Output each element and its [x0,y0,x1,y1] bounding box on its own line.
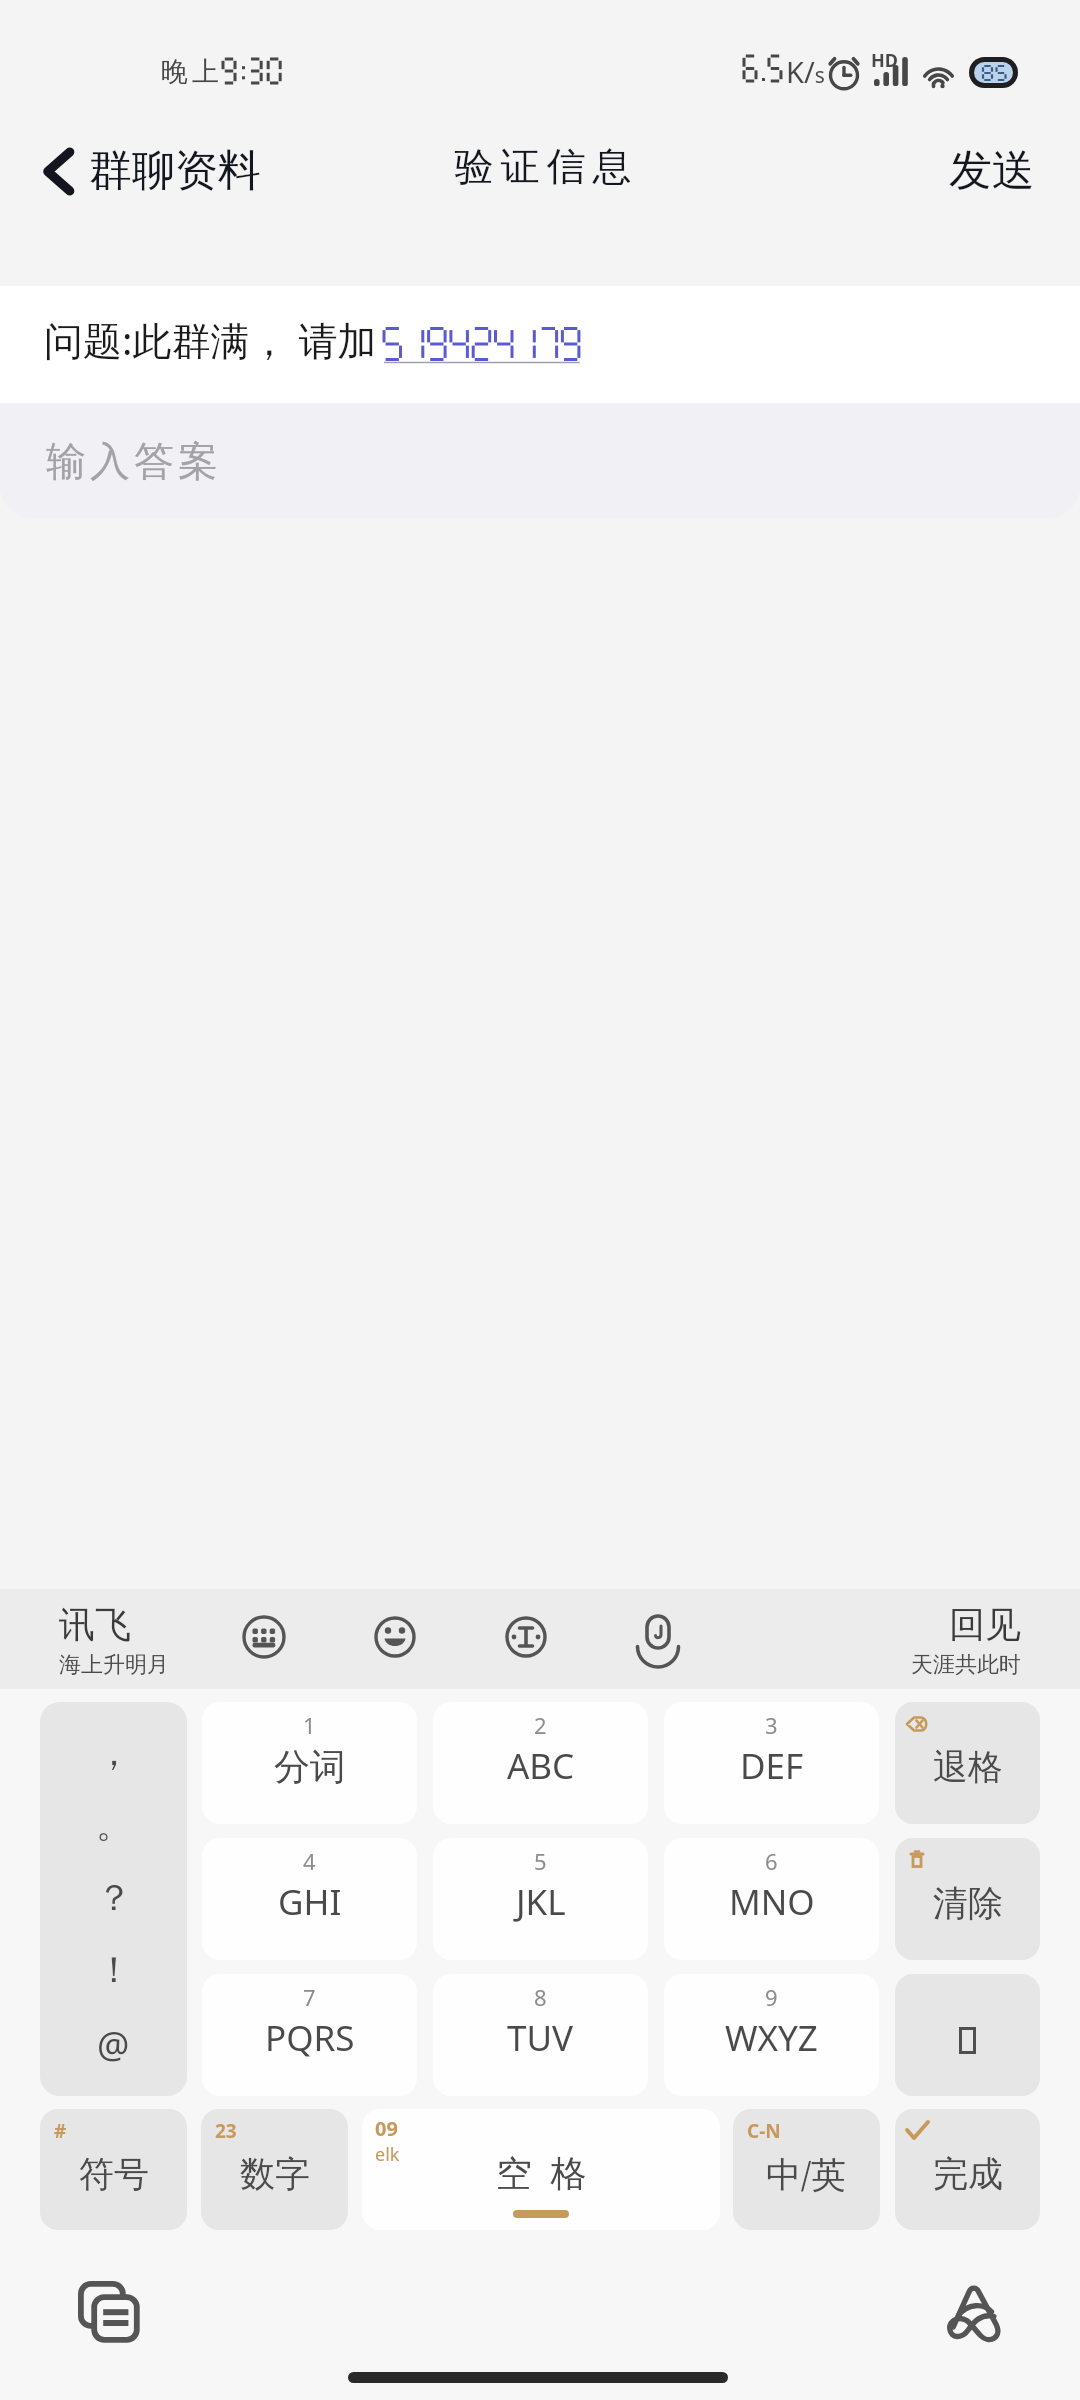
button[interactable]: 8 [433,1974,648,2096]
staticText: GHI [278,1878,342,1926]
staticText: 清除 [933,1881,1003,1925]
button[interactable] [895,1974,1040,2096]
staticText: 4 [303,1846,316,1876]
staticText: 1 [303,1710,316,1740]
staticText: JKL [516,1878,566,1926]
button[interactable]: 23 [201,2109,348,2230]
button[interactable]: C-N [733,2109,880,2230]
button[interactable]: 发送 [930,130,1054,212]
button[interactable]: # [40,2109,187,2230]
staticText: 海上升明月 [59,1651,169,1679]
button[interactable]: Back to 群聊资料 [26,130,280,212]
staticText: @ [97,2020,130,2069]
staticText: C-N [747,2118,781,2144]
staticText: 发送 [949,144,1035,198]
staticText: 回见 [949,1602,1021,1647]
staticText: 问题:此群满， 请加 [44,313,377,366]
staticText: 晚上 [159,55,221,89]
staticText: ， [96,1730,132,1775]
button[interactable]: 09 [362,2109,720,2230]
button[interactable]: Keyboard [232,1605,296,1669]
staticText: 完成 [933,2152,1003,2196]
staticText: 输入答案 [44,436,220,486]
staticText: 3 [765,1710,778,1740]
staticText: 数字 [240,2152,310,2196]
staticText: MNO [729,1878,815,1926]
staticText: 分词 [274,1744,346,1789]
staticText: 天涯共此时 [911,1651,1021,1679]
staticText: 。 [96,1802,132,1847]
staticText: 验证信息 [451,142,635,191]
staticText: DEF [740,1742,804,1790]
staticText: # [54,2118,67,2144]
staticText: 9 [765,1982,778,2012]
staticText: 空 格 [496,2148,587,2197]
button[interactable]: 输入答案 [0,403,1080,518]
button[interactable]: 清除 [895,1838,1040,1960]
button[interactable]: 6 [664,1838,879,1960]
button[interactable]: 5 [433,1838,648,1960]
button[interactable]: 4 [202,1838,417,1960]
button[interactable]: Clipboard [62,2265,154,2357]
button[interactable]: Voice input [626,1605,690,1669]
button[interactable]: iFlytek input method [928,2268,1018,2358]
staticText: 符号 [79,2152,149,2196]
staticText: 6 [765,1846,778,1876]
staticText: 群聊资料 [89,144,261,198]
button[interactable]: 7 [202,1974,417,2096]
staticText: 23 [215,2118,237,2144]
staticText: 讯飞 [59,1602,131,1647]
staticText: ！ [96,1947,132,1992]
staticText: 中/英 [766,2150,847,2198]
staticText: 8 [534,1982,547,2012]
button[interactable]: 完成 [895,2109,1040,2230]
staticText: 09 [375,2115,398,2142]
staticText: ABC [507,1742,575,1790]
staticText: HD [871,48,898,73]
staticText: elk [375,2142,400,2167]
staticText: TUV [507,2014,574,2062]
staticText: 2 [534,1710,547,1740]
staticText: 7 [303,1982,316,2012]
button[interactable]: Emoji [363,1605,427,1669]
staticText: 5 [534,1846,547,1876]
staticText: 退格 [933,1745,1003,1789]
button[interactable]: 3 [664,1702,879,1824]
button[interactable]: 退格 [895,1702,1040,1824]
button[interactable]: 1 [202,1702,417,1824]
button[interactable]: 9 [664,1974,879,2096]
staticText: ？ [96,1875,132,1920]
button[interactable]: ， [40,1702,187,2096]
staticText: WXYZ [725,2014,818,2062]
button[interactable]: 2 [433,1702,648,1824]
staticText: K/s [786,52,825,91]
staticText: PQRS [265,2014,355,2062]
button[interactable]: Text edit [494,1605,558,1669]
